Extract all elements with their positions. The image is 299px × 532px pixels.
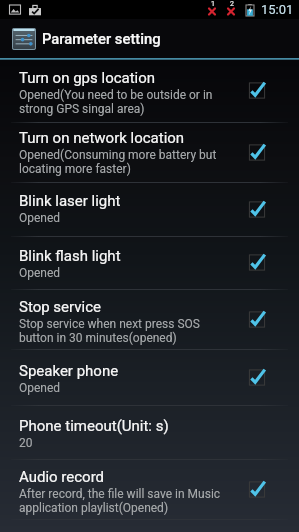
staticText: 2 (230, 0, 234, 8)
staticText: Opened(You need to be outside or in stro… (19, 88, 213, 116)
button[interactable]: Blink laser light (0, 183, 299, 237)
button[interactable]: Phone timeout(Unit: s) (0, 406, 299, 460)
staticText: Opened (19, 266, 61, 280)
button[interactable]: Blink flash light (0, 237, 299, 290)
button[interactable]: Turn on gps location (0, 60, 299, 123)
button[interactable]: Stop service (0, 290, 299, 350)
staticText: Blink laser light (19, 192, 121, 210)
button[interactable]: Toggle Audio record (246, 478, 268, 500)
button[interactable]: Turn on network location (0, 123, 299, 183)
staticText: 15:01 (261, 2, 294, 17)
button[interactable]: Audio record (0, 460, 299, 520)
staticText: Speaker phone (19, 362, 119, 380)
staticText: After record, the file will save in Musi… (19, 487, 221, 515)
staticText: Phone timeout(Unit: s) (19, 417, 169, 435)
staticText: Stop service (19, 298, 101, 316)
button[interactable]: Toggle Speaker phone (246, 366, 268, 388)
staticText: Opened (19, 381, 61, 395)
staticText: 20 (19, 436, 33, 450)
staticText: Parameter setting (42, 30, 161, 47)
staticText: 1 (211, 0, 215, 8)
staticText: Opened (19, 211, 61, 225)
button[interactable]: Parameter setting (0, 19, 299, 58)
button[interactable]: Toggle Turn on network location (246, 141, 268, 163)
staticText: Stop service when next press SOS button … (19, 317, 200, 345)
staticText: Blink flash light (19, 247, 121, 265)
button[interactable]: Toggle Stop service (246, 308, 268, 330)
staticText: Audio record (19, 468, 105, 486)
button[interactable]: Speaker phone (0, 350, 299, 406)
staticText: Turn on network location (19, 129, 185, 147)
button[interactable]: Toggle Blink laser light (246, 198, 268, 220)
button[interactable]: Toggle Blink flash light (246, 251, 268, 273)
button[interactable]: Toggle Turn on gps location (246, 79, 268, 101)
staticText: Opened(Consuming more battery but locati… (19, 148, 217, 176)
staticText: Turn on gps location (19, 69, 156, 87)
